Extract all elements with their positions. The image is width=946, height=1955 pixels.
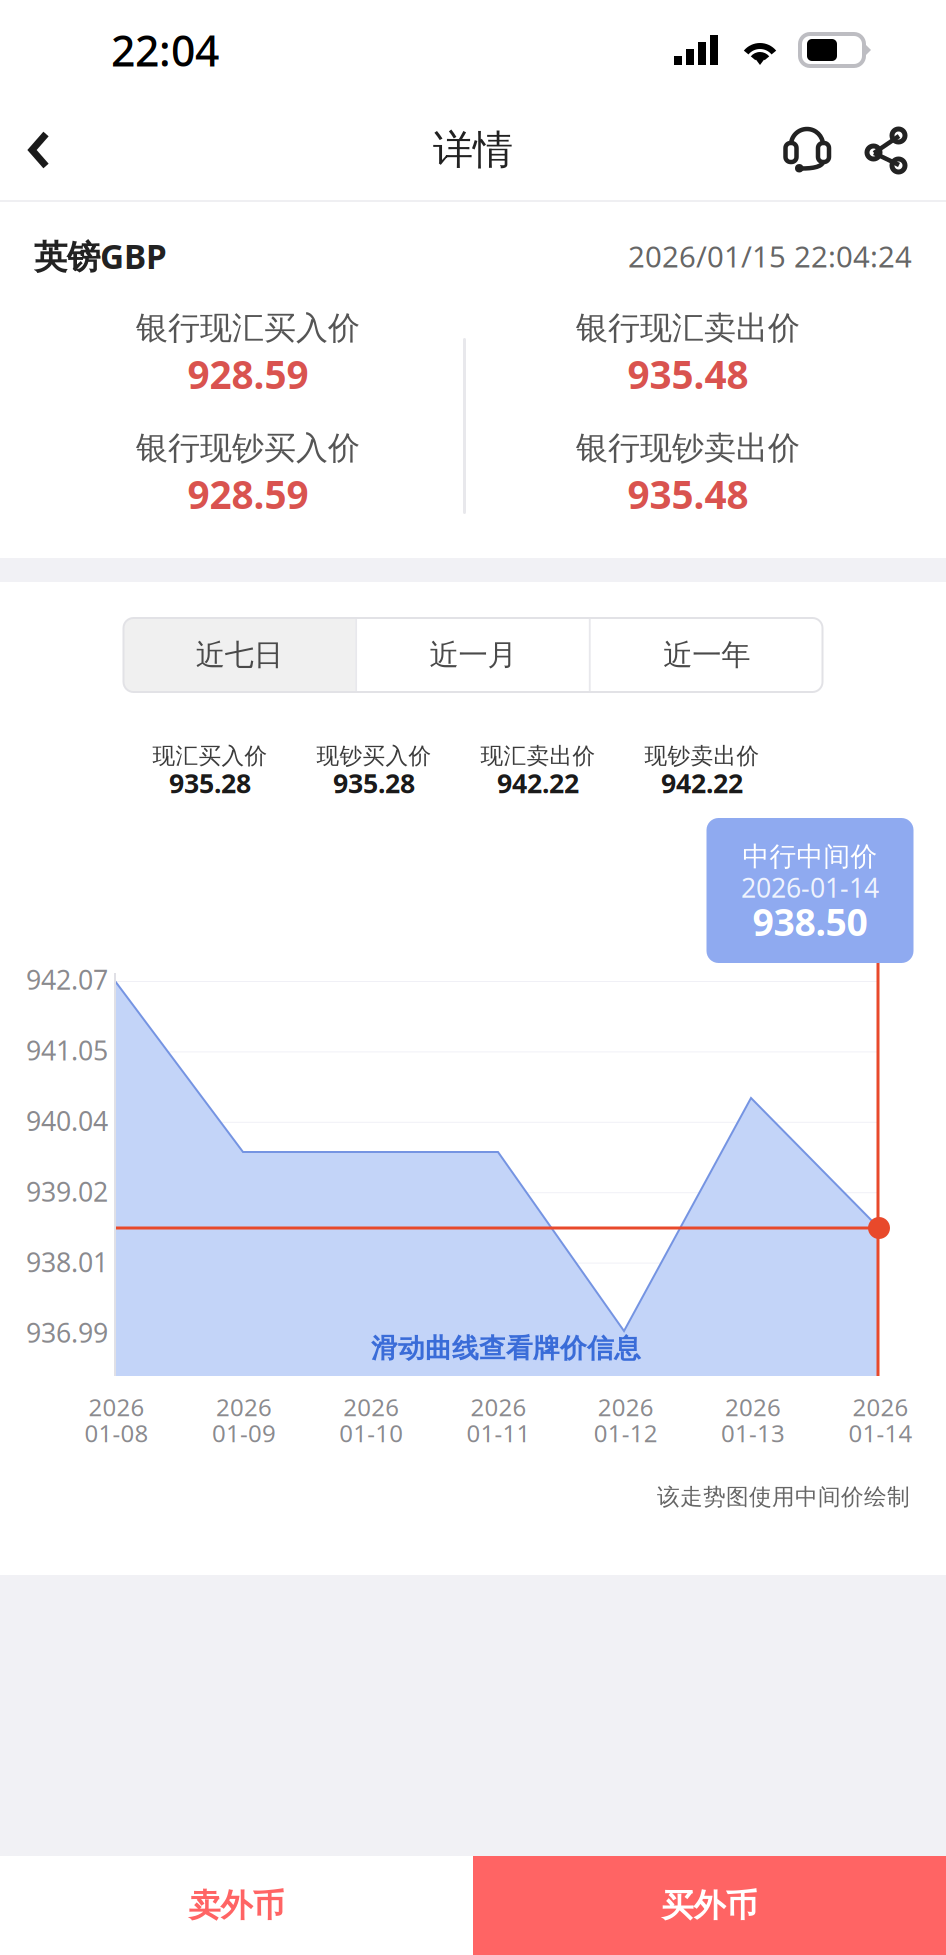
button[interactable]: Customer service xyxy=(768,100,846,200)
button[interactable]: 卖外币 xyxy=(0,1856,473,1955)
staticText: 2026 xyxy=(343,1391,399,1423)
staticText: 2026-01-14 xyxy=(741,870,879,905)
staticText: 01-10 xyxy=(339,1417,403,1449)
staticText: 939.02 xyxy=(26,1174,108,1209)
button[interactable]: 近一月 xyxy=(357,618,589,692)
staticText: 银行现钞买入价 xyxy=(136,428,360,468)
staticText: 现钞买入价 xyxy=(316,742,431,770)
button[interactable]: 买外币 xyxy=(473,1856,946,1955)
staticText: 935.28 xyxy=(333,765,415,801)
button[interactable]: 近一年 xyxy=(591,618,822,692)
staticText: 详情 xyxy=(433,125,513,174)
staticText: 2026 xyxy=(725,1391,781,1423)
button[interactable]: Share xyxy=(846,100,926,200)
staticText: 英镑GBP xyxy=(34,234,167,278)
staticText: 942.22 xyxy=(661,765,743,801)
staticText: 2026/01/15 22:04:24 xyxy=(628,236,912,275)
staticText: 01-13 xyxy=(721,1417,785,1449)
staticText: 941.05 xyxy=(26,1032,108,1068)
staticText: 2026 xyxy=(216,1391,272,1423)
staticText: 近一年 xyxy=(663,637,750,673)
staticText: 2026 xyxy=(470,1391,526,1423)
staticText: 01-12 xyxy=(594,1417,658,1449)
button[interactable]: 近七日 xyxy=(123,618,355,692)
staticText: 卖外币 xyxy=(188,1886,284,1925)
staticText: 942.07 xyxy=(26,962,108,997)
staticText: 现汇卖出价 xyxy=(480,742,595,770)
staticText: 近七日 xyxy=(196,637,283,673)
staticText: 938.50 xyxy=(752,897,867,946)
staticText: 银行现汇卖出价 xyxy=(576,308,800,348)
staticText: 942.22 xyxy=(497,765,579,801)
staticText: 近一月 xyxy=(429,637,516,673)
staticText: 滑动曲线查看牌价信息 xyxy=(371,1332,641,1365)
button[interactable]: Back xyxy=(0,100,84,200)
staticText: 935.48 xyxy=(627,468,748,520)
staticText: 2026 xyxy=(598,1391,654,1423)
staticText: 928.59 xyxy=(187,468,308,520)
staticText: 2026 xyxy=(89,1391,145,1423)
staticText: 928.59 xyxy=(187,348,308,400)
staticText: 该走势图使用中间价绘制 xyxy=(657,1483,910,1511)
staticText: 01-11 xyxy=(466,1417,530,1449)
staticText: 938.01 xyxy=(26,1244,108,1280)
staticText: 01-08 xyxy=(85,1417,149,1449)
staticText: 现钞卖出价 xyxy=(644,742,759,770)
staticText: 935.48 xyxy=(627,348,748,400)
staticText: 中行中间价 xyxy=(742,840,877,873)
staticText: 936.99 xyxy=(26,1315,108,1350)
staticText: 买外币 xyxy=(661,1886,757,1925)
staticText: 01-14 xyxy=(848,1417,912,1449)
staticText: 940.04 xyxy=(26,1103,108,1138)
staticText: 现汇买入价 xyxy=(152,742,267,770)
staticText: 银行现汇买入价 xyxy=(136,308,360,348)
staticText: 01-09 xyxy=(212,1417,276,1449)
staticText: 银行现钞卖出价 xyxy=(576,428,800,468)
staticText: 935.28 xyxy=(169,765,251,801)
staticText: 22:04 xyxy=(111,22,219,78)
staticText: 2026 xyxy=(852,1391,908,1423)
